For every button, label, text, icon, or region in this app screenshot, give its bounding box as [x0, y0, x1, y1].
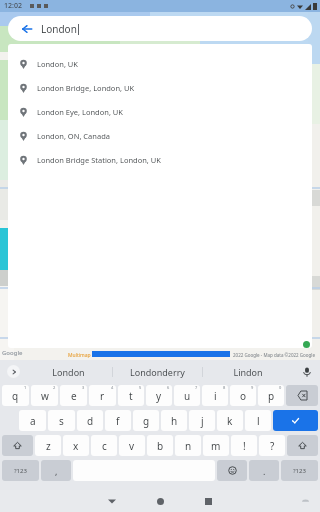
- staticText: 1: [24, 385, 27, 390]
- staticText: s: [59, 414, 64, 428]
- button[interactable]: l: [245, 410, 271, 431]
- staticText: 5: [139, 385, 142, 390]
- button[interactable]: Recent apps: [193, 490, 223, 512]
- button[interactable]: s: [48, 410, 75, 431]
- staticText: o: [240, 389, 247, 403]
- staticText: 12:02: [4, 1, 22, 11]
- button[interactable]: k: [217, 410, 243, 431]
- staticText: i: [214, 389, 217, 403]
- staticText: w: [41, 389, 49, 403]
- button[interactable]: London, ON, Canada: [8, 124, 312, 148]
- button[interactable]: c: [91, 435, 117, 456]
- button[interactable]: j: [189, 410, 215, 431]
- button[interactable]: y: [146, 385, 172, 406]
- button[interactable]: ?123: [281, 460, 318, 481]
- button[interactable]: w: [31, 385, 58, 406]
- button[interactable]: Home: [145, 490, 175, 512]
- button[interactable]: Backspace: [286, 385, 318, 406]
- staticText: d: [87, 414, 94, 428]
- button[interactable]: x: [63, 435, 89, 456]
- button[interactable]: r: [89, 385, 116, 406]
- button[interactable]: !: [231, 435, 257, 456]
- button[interactable]: London Eye, London, UK: [8, 100, 312, 124]
- button[interactable]: Emoji: [217, 460, 247, 481]
- button[interactable]: t: [118, 385, 144, 406]
- staticText: h: [171, 414, 178, 428]
- staticText: 4: [111, 385, 114, 390]
- button[interactable]: i: [202, 385, 228, 406]
- button[interactable]: d: [77, 410, 103, 431]
- button[interactable]: h: [161, 410, 187, 431]
- button[interactable]: m: [203, 435, 229, 456]
- staticText: x: [73, 439, 79, 453]
- button[interactable]: Back: [97, 490, 127, 512]
- button[interactable]: z: [35, 435, 61, 456]
- button[interactable]: Shift: [2, 435, 33, 456]
- staticText: 0: [279, 385, 282, 390]
- staticText: p: [268, 389, 275, 403]
- staticText: 2022 Google - Map data ©2022 Google: [233, 352, 315, 358]
- staticText: e: [71, 389, 77, 403]
- button[interactable]: ,: [41, 460, 71, 481]
- button[interactable]: .: [249, 460, 279, 481]
- button[interactable]: Lindon: [203, 360, 292, 383]
- staticText: London, ON, Canada: [37, 131, 110, 141]
- button[interactable]: Back: [8, 16, 312, 41]
- staticText: t: [129, 389, 133, 403]
- staticText: Multimap: [68, 352, 91, 359]
- button[interactable]: Voice input: [301, 366, 313, 378]
- staticText: l: [257, 414, 260, 428]
- staticText: g: [143, 414, 150, 428]
- button[interactable]: u: [174, 385, 200, 406]
- button[interactable]: Back: [21, 23, 33, 35]
- staticText: ?123: [293, 467, 306, 475]
- button[interactable]: Expand suggestions: [7, 365, 20, 378]
- button[interactable]: London, UK: [8, 52, 312, 76]
- button[interactable]: v: [119, 435, 145, 456]
- button[interactable]: Hide keyboard: [298, 494, 312, 508]
- button[interactable]: q: [2, 385, 29, 406]
- staticText: ?: [270, 439, 275, 453]
- button[interactable]: Londonderry: [113, 360, 202, 383]
- button[interactable]: o: [230, 385, 256, 406]
- staticText: k: [227, 414, 233, 428]
- staticText: q: [12, 389, 19, 403]
- button[interactable]: p: [258, 385, 284, 406]
- button[interactable]: London: [24, 360, 112, 383]
- staticText: London Bridge, London, UK: [37, 83, 135, 93]
- staticText: 9: [251, 385, 254, 390]
- staticText: .: [263, 465, 266, 477]
- staticText: London Eye, London, UK: [37, 107, 123, 117]
- staticText: v: [129, 439, 135, 453]
- button[interactable]: London Bridge Station, London, UK: [8, 148, 312, 172]
- staticText: ?123: [14, 467, 27, 475]
- button[interactable]: n: [175, 435, 201, 456]
- staticText: 8: [223, 385, 226, 390]
- button[interactable]: g: [133, 410, 159, 431]
- staticText: Lindon: [233, 366, 263, 378]
- button[interactable]: ?: [259, 435, 285, 456]
- staticText: y: [156, 389, 162, 403]
- staticText: 7: [195, 385, 198, 390]
- staticText: London Bridge Station, London, UK: [37, 155, 161, 165]
- staticText: Londonderry: [130, 366, 185, 378]
- button[interactable]: London Bridge, London, UK: [8, 76, 312, 100]
- button[interactable]: a: [19, 410, 46, 431]
- button[interactable]: Enter: [273, 410, 318, 431]
- staticText: n: [185, 439, 192, 453]
- button[interactable]: b: [147, 435, 173, 456]
- staticText: 2: [53, 385, 56, 390]
- staticText: m: [211, 439, 221, 453]
- button[interactable]: Shift: [287, 435, 318, 456]
- staticText: London: [41, 22, 77, 36]
- staticText: f: [116, 414, 120, 428]
- staticText: 3: [82, 385, 85, 390]
- staticText: r: [100, 389, 105, 403]
- staticText: z: [46, 439, 51, 453]
- button[interactable]: f: [105, 410, 131, 431]
- staticText: j: [201, 414, 204, 428]
- button[interactable]: ?123: [2, 460, 39, 481]
- button[interactable]: e: [60, 385, 87, 406]
- staticText: Google: [2, 349, 23, 357]
